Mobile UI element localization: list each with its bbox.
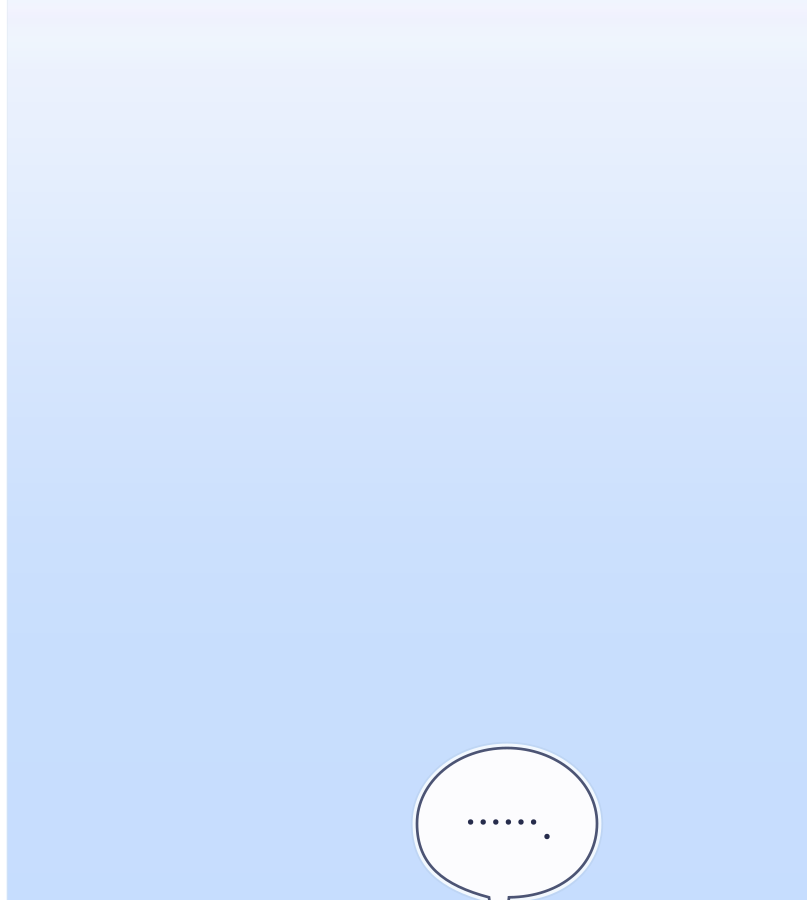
button[interactable]: Speech bubble <box>408 739 606 900</box>
